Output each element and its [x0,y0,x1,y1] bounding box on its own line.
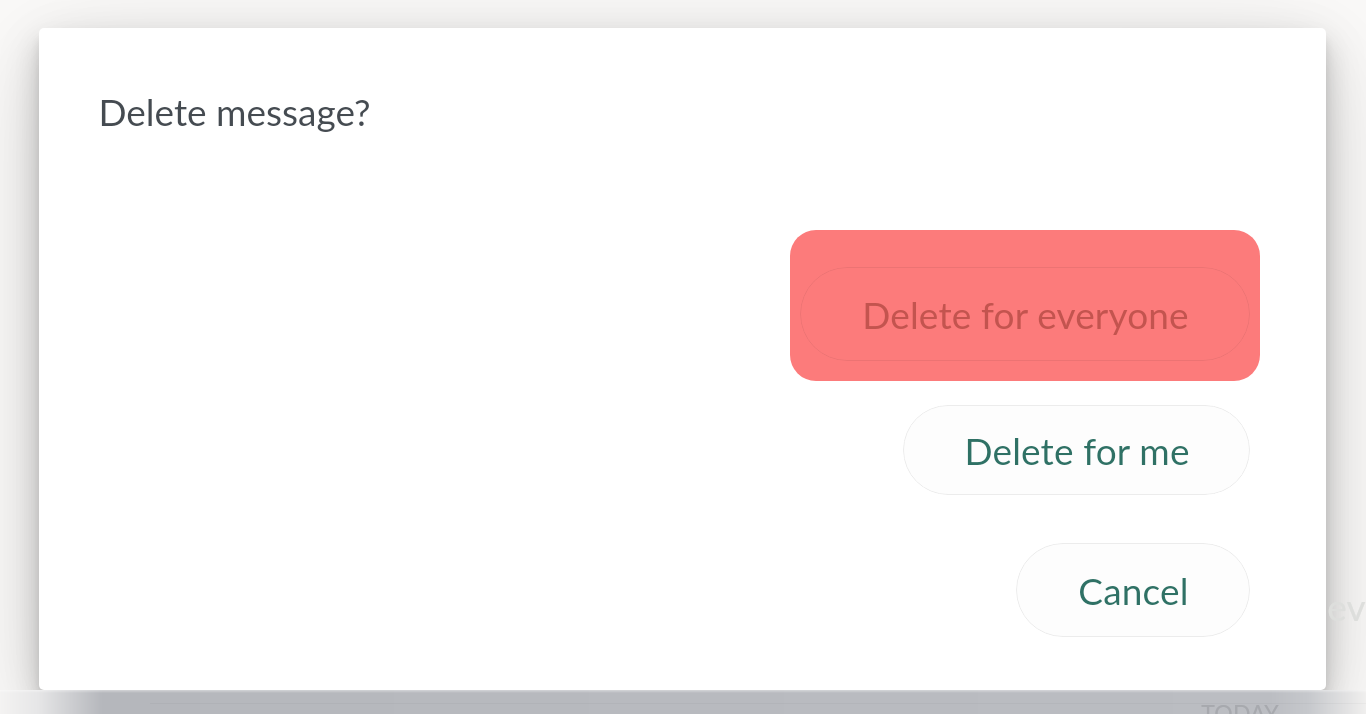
staticText: TODAY [1201,699,1279,714]
button[interactable]: Delete for me [903,405,1250,495]
staticText: Delete message? [98,89,371,133]
button[interactable]: Cancel [1016,543,1250,637]
staticText: Cancel [1078,568,1189,612]
staticText: Delete for everyone [862,292,1189,336]
staticText: Delete for me [964,428,1190,472]
staticText: eve [1327,584,1366,628]
button[interactable]: Delete for everyone [790,230,1260,381]
